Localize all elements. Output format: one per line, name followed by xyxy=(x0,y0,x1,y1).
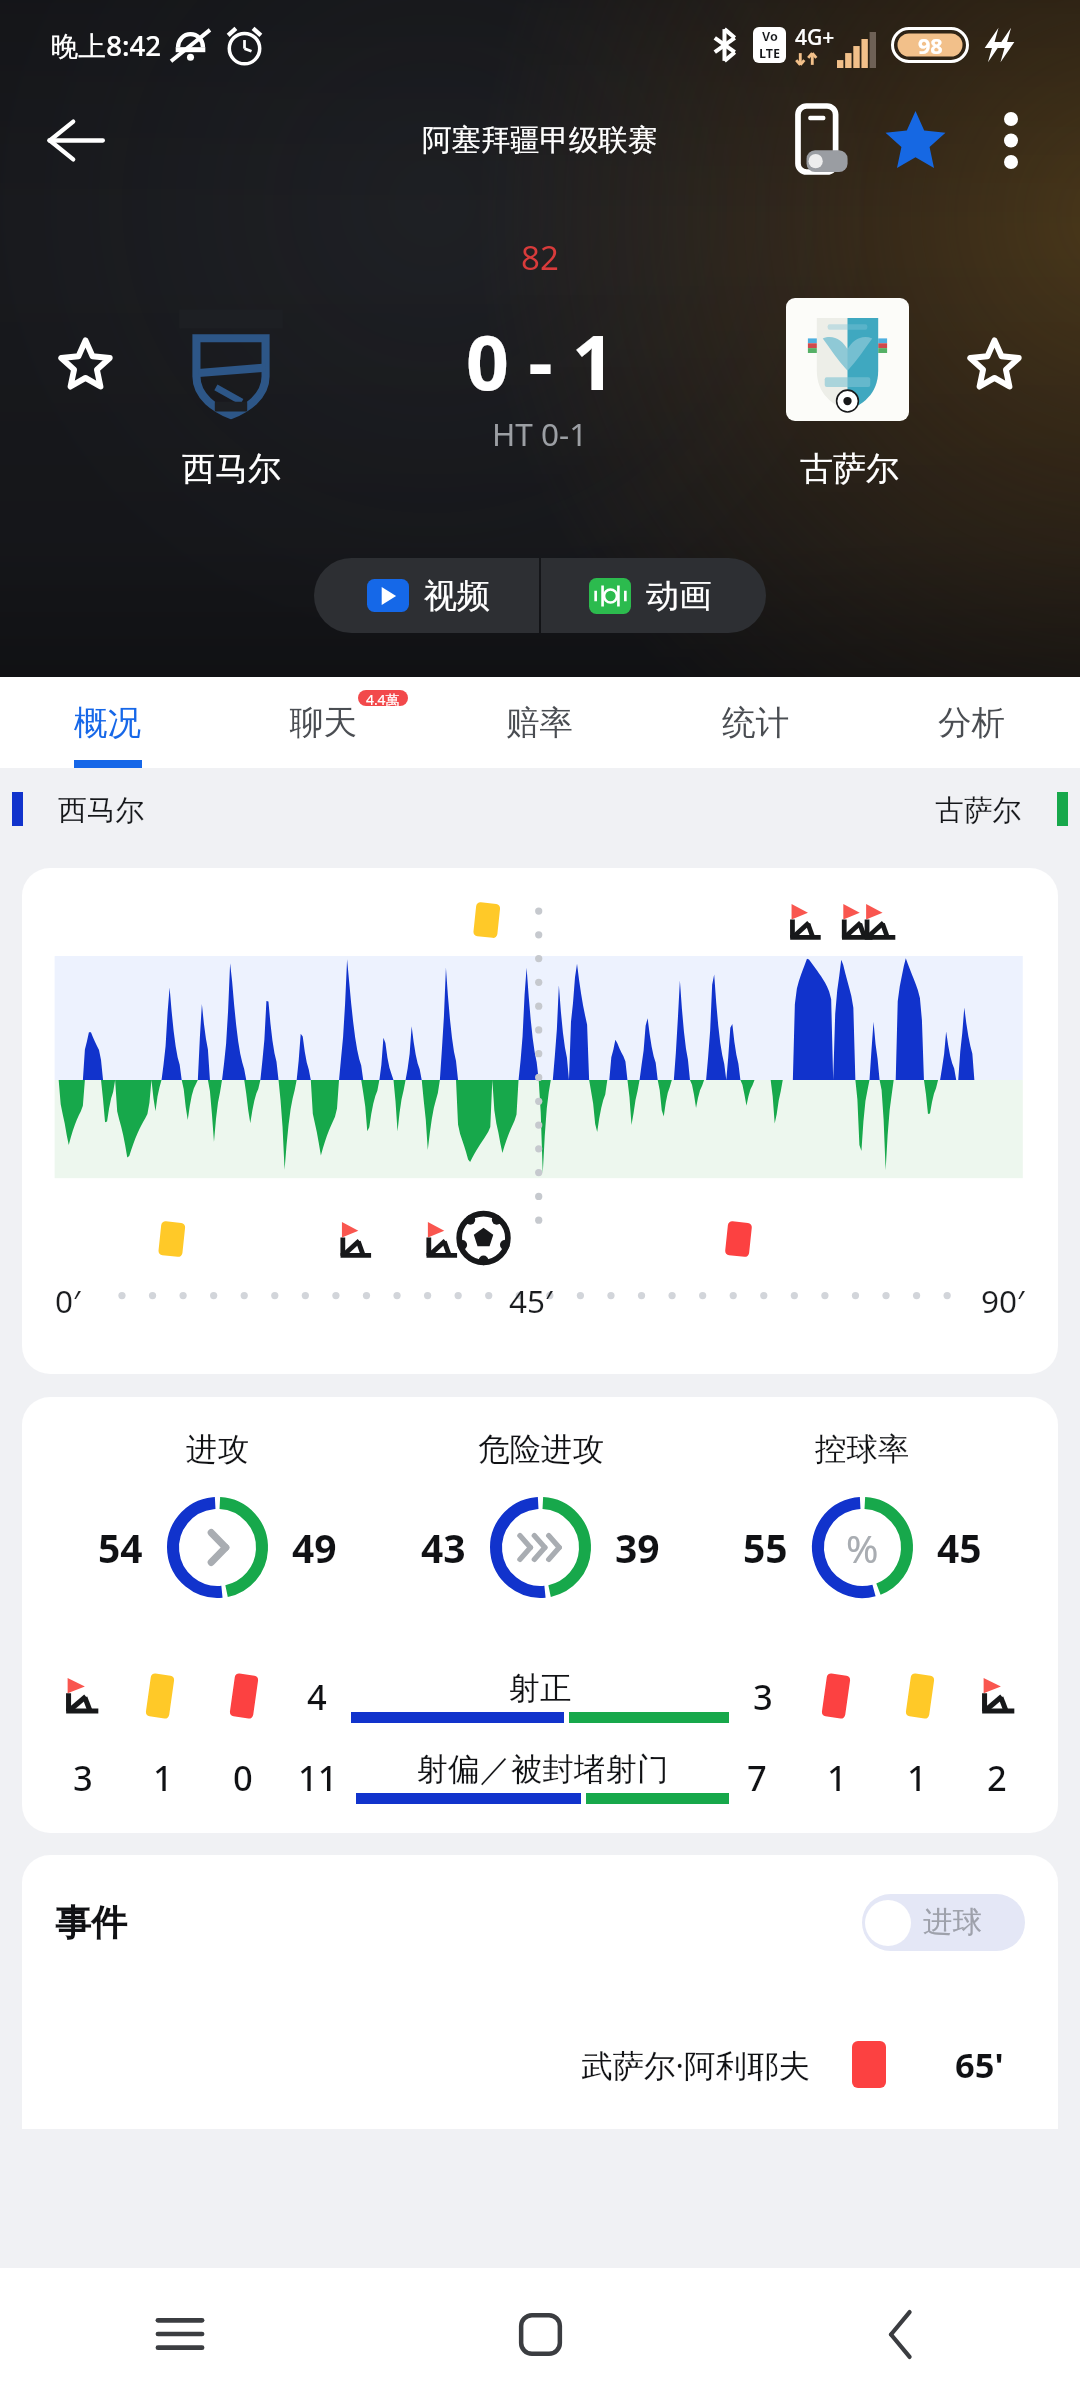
staticText: 进攻 xyxy=(186,1430,249,1470)
staticText: 0 - 1 xyxy=(466,310,615,412)
staticText: LTE xyxy=(759,45,781,62)
staticText: 西马尔 xyxy=(58,792,145,826)
button[interactable]: Recent apps xyxy=(0,2268,360,2400)
staticText: 统计 xyxy=(722,702,790,744)
staticText: 98 xyxy=(918,31,943,60)
button[interactable]: 统计 xyxy=(648,677,864,768)
staticText: 2 xyxy=(987,1754,1007,1801)
staticText: 7 xyxy=(747,1754,767,1801)
staticText: 视频 xyxy=(424,575,490,617)
button[interactable]: 动画 xyxy=(541,558,766,633)
staticText: 4G+ xyxy=(795,23,835,52)
staticText: 82 xyxy=(521,235,559,280)
staticText: Vo xyxy=(762,28,778,45)
staticText: 45′ xyxy=(509,1279,553,1322)
staticText: 控球率 xyxy=(815,1430,910,1470)
staticText: 事件 xyxy=(55,1900,127,1945)
staticText: 概况 xyxy=(74,702,142,744)
staticText: 90′ xyxy=(981,1279,1025,1322)
staticText: 赔率 xyxy=(506,702,574,744)
staticText: HT 0-1 xyxy=(492,412,588,455)
staticText: 11 xyxy=(298,1754,338,1801)
staticText: 古萨尔 xyxy=(935,792,1022,826)
button[interactable]: 概况 xyxy=(0,677,216,768)
staticText: 43 xyxy=(421,1521,466,1574)
staticText: 射正 xyxy=(351,1669,729,1709)
staticText: 进球 xyxy=(923,1904,982,1941)
button[interactable]: Favourite xyxy=(867,90,963,190)
staticText: 西马尔 xyxy=(182,448,281,490)
button[interactable]: Home xyxy=(360,2268,720,2400)
button[interactable]: Back xyxy=(720,2268,1080,2400)
staticText: 1 xyxy=(907,1754,927,1801)
staticText: 0 xyxy=(233,1754,253,1801)
staticText: 1 xyxy=(153,1754,173,1801)
button[interactable]: 进球 xyxy=(862,1894,1025,1951)
staticText: 危险进攻 xyxy=(478,1430,604,1470)
staticText: 39 xyxy=(615,1521,660,1574)
button[interactable]: 赔率 xyxy=(432,677,648,768)
staticText: 4 xyxy=(307,1673,327,1720)
staticText: 55 xyxy=(743,1521,788,1574)
staticText: 古萨尔 xyxy=(800,448,899,490)
staticText: 49 xyxy=(292,1521,337,1574)
staticText: 1 xyxy=(827,1754,847,1801)
staticText: 动画 xyxy=(646,575,712,617)
button[interactable]: Notification settings xyxy=(774,90,870,190)
staticText: 聊天 xyxy=(290,702,358,744)
staticText: 4.4萬 xyxy=(366,690,400,706)
staticText: 分析 xyxy=(938,702,1006,744)
staticText: 0′ xyxy=(55,1279,81,1322)
staticText: 45 xyxy=(937,1521,982,1574)
staticText: 3 xyxy=(73,1754,93,1801)
staticText: 3 xyxy=(753,1673,773,1720)
staticText: 射偏／被封堵射门 xyxy=(356,1750,729,1790)
button[interactable]: 视频 xyxy=(314,558,539,633)
button[interactable]: Favourite home team xyxy=(30,322,141,406)
staticText: 晚上8:42 xyxy=(51,26,162,64)
button[interactable]: 聊天 xyxy=(216,677,432,768)
button[interactable]: Back xyxy=(12,90,138,190)
staticText: % xyxy=(846,1521,879,1574)
staticText: 武萨尔·阿利耶夫 xyxy=(581,2043,810,2086)
staticText: 65' xyxy=(955,2041,1004,2088)
staticText: 54 xyxy=(98,1521,143,1574)
staticText: 阿塞拜疆甲级联赛 xyxy=(422,122,658,159)
button[interactable]: More options xyxy=(963,90,1059,190)
button[interactable]: 分析 xyxy=(864,677,1080,768)
button[interactable]: Favourite away team xyxy=(939,322,1050,406)
